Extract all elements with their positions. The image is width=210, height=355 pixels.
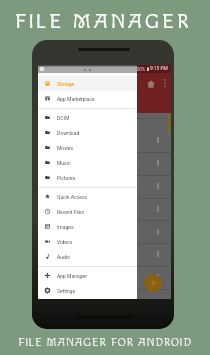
staticText: 100%: [134, 67, 146, 72]
button[interactable]: Music: [38, 155, 137, 170]
button[interactable]: Movies: [38, 140, 137, 155]
button[interactable]: Recent Files: [38, 204, 137, 219]
staticText: Recent Files: [57, 209, 85, 215]
button[interactable]: Row menu: [153, 181, 162, 190]
staticText: Images: [57, 224, 74, 230]
staticText: Download: [57, 130, 80, 136]
staticText: Videos: [57, 239, 73, 245]
staticText: 9:15 PM: [150, 66, 168, 72]
staticText: FILE MANAGER: [0, 10, 208, 34]
button[interactable]: Images: [38, 219, 137, 234]
button[interactable]: Row menu: [153, 204, 162, 213]
staticText: Movies: [57, 145, 74, 151]
button[interactable]: Videos: [38, 234, 137, 249]
button[interactable]: Pictures: [38, 170, 137, 185]
button[interactable]: More options: [159, 77, 171, 89]
button[interactable]: Row menu: [153, 227, 162, 236]
staticText: Storage: [57, 81, 75, 87]
staticText: Pictures: [57, 175, 76, 181]
button[interactable]: Row menu: [153, 158, 162, 167]
staticText: App Marketplace: [57, 96, 95, 102]
button[interactable]: Row menu: [153, 135, 162, 144]
staticText: Music: [57, 160, 71, 166]
staticText: Quick Access: [57, 194, 88, 200]
staticText: Audio: [57, 254, 70, 260]
staticText: Settings: [57, 288, 76, 294]
staticText: FILE MANAGER FOR ANDROID: [0, 336, 210, 349]
button[interactable]: Settings: [38, 283, 137, 298]
staticText: App Manager: [57, 273, 87, 279]
button[interactable]: Download: [38, 125, 137, 140]
button[interactable]: App Marketplace: [38, 91, 137, 106]
button[interactable]: DCIM: [38, 110, 137, 125]
button[interactable]: Home: [144, 77, 158, 91]
staticText: DCIM: [57, 115, 70, 121]
button[interactable]: Add: [144, 274, 162, 292]
button[interactable]: App Manager: [38, 268, 137, 283]
button[interactable]: Row menu: [153, 249, 162, 258]
button[interactable]: Storage: [38, 76, 137, 91]
button[interactable]: Audio: [38, 249, 137, 264]
button[interactable]: Row menu: [153, 272, 162, 281]
button[interactable]: Quick Access: [38, 189, 137, 204]
